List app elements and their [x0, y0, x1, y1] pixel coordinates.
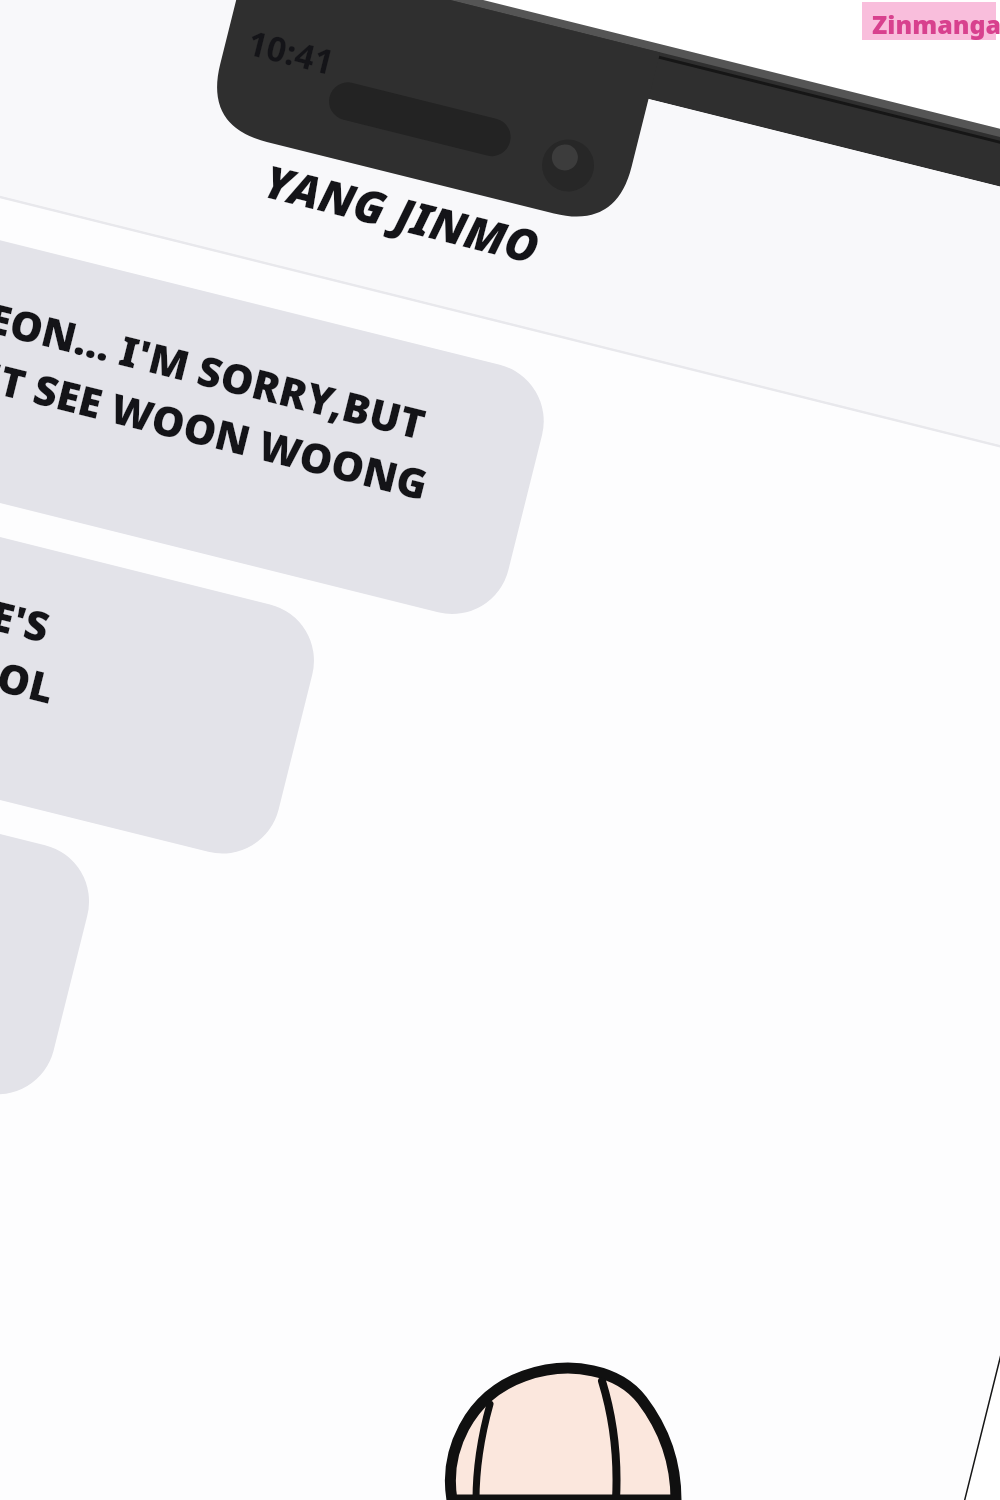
button[interactable]: Chat conversation with Yang Jinmo — [0, 0, 1000, 1500]
